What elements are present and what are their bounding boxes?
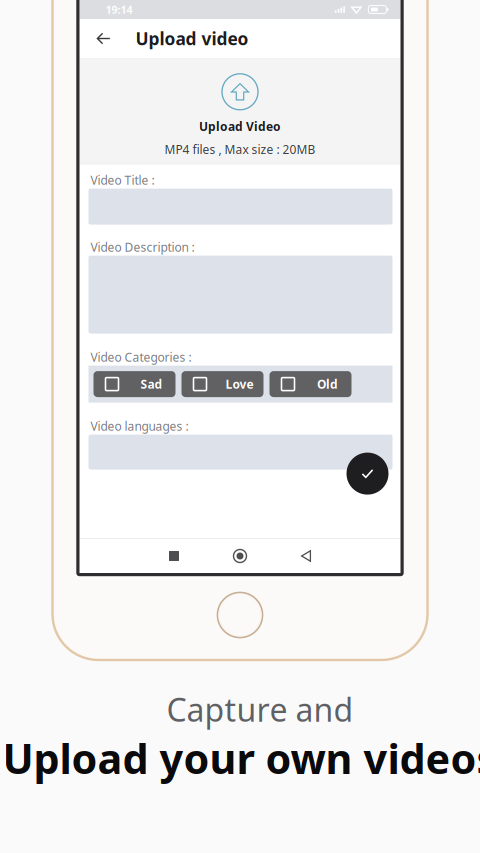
staticText: Old bbox=[317, 376, 338, 392]
staticText: Video languages : bbox=[90, 418, 188, 434]
button[interactable]: Love bbox=[181, 371, 263, 397]
staticText: Love bbox=[225, 376, 253, 392]
staticText: Upload video bbox=[135, 27, 248, 50]
staticText: Sad bbox=[140, 376, 162, 392]
button[interactable]: Old bbox=[269, 371, 351, 397]
button[interactable]: Back bbox=[89, 19, 117, 58]
staticText: Upload Video bbox=[199, 118, 281, 134]
staticText: Capture and bbox=[166, 688, 353, 730]
button[interactable]: Home bbox=[207, 539, 273, 573]
button[interactable]: Submit bbox=[346, 453, 388, 495]
staticText: 19:14 bbox=[105, 2, 132, 17]
button[interactable]: Recent apps bbox=[141, 539, 207, 573]
staticText: MP4 files , Max size : 20MB bbox=[164, 141, 315, 157]
staticText: Upload your own videos bbox=[2, 730, 480, 785]
button[interactable]: Sad bbox=[93, 371, 175, 397]
staticText: Video Categories : bbox=[90, 349, 191, 365]
staticText: Video Title : bbox=[90, 172, 154, 188]
button[interactable]: Back bbox=[273, 539, 339, 573]
staticText: Video Description : bbox=[90, 239, 194, 255]
